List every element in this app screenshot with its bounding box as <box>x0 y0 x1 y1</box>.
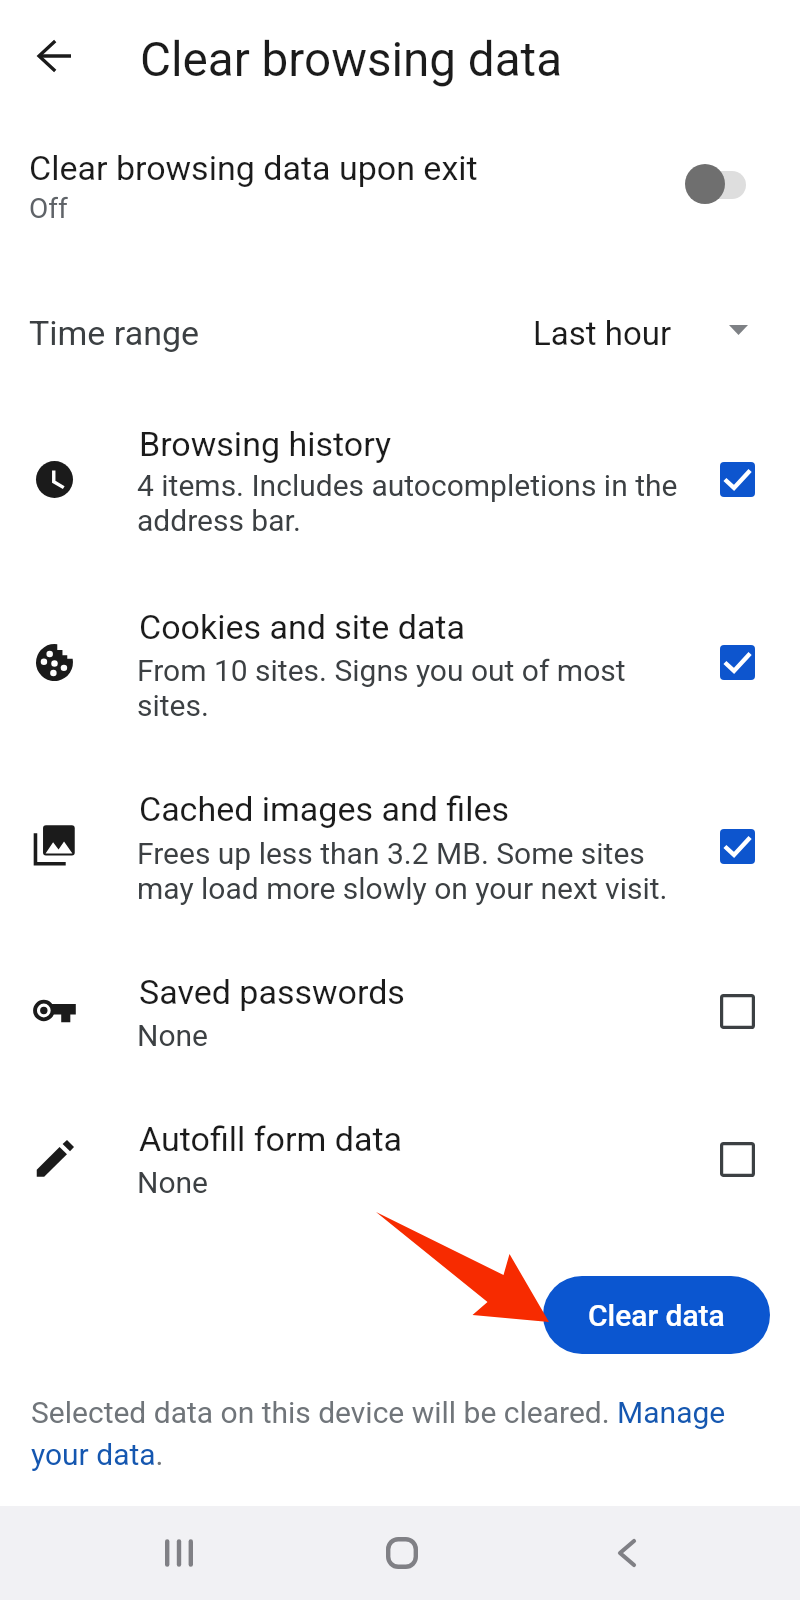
button[interactable]: Recent apps <box>124 1506 234 1600</box>
button[interactable]: Browsing history <box>0 405 800 565</box>
staticText: may load more slowly on your next visit. <box>137 871 668 906</box>
staticText: Last hour <box>533 314 672 353</box>
button[interactable]: Clear browsing data upon exit <box>670 152 766 218</box>
staticText: Saved passwords <box>139 972 405 1012</box>
button[interactable]: Cookies and site data <box>720 645 755 680</box>
button[interactable]: Autofill form data <box>720 1142 755 1177</box>
staticText: sites. <box>137 688 209 723</box>
button[interactable]: Back <box>572 1506 682 1600</box>
button[interactable]: Clear data <box>543 1276 770 1354</box>
button[interactable]: Saved passwords <box>720 994 755 1029</box>
staticText: Cookies and site data <box>139 607 465 647</box>
staticText: address bar. <box>137 503 301 538</box>
staticText: Frees up less than 3.2 MB. Some sites <box>137 836 645 871</box>
staticText: Off <box>29 192 68 225</box>
staticText: From 10 sites. Signs you out of most <box>137 653 626 688</box>
button[interactable]: Clear browsing data upon exit <box>0 131 800 239</box>
button[interactable]: Time range <box>0 285 800 377</box>
button[interactable]: Cached images and files <box>0 772 800 932</box>
staticText: Selected data on this device will be cle… <box>31 1395 731 1473</box>
staticText: Cached images and files <box>139 789 510 829</box>
staticText: Browsing history <box>139 424 392 464</box>
button[interactable]: Navigate up <box>22 23 88 89</box>
staticText: Clear data <box>588 1298 725 1333</box>
staticText: Clear browsing data <box>140 32 563 88</box>
staticText: None <box>137 1165 208 1200</box>
staticText: 4 items. Includes autocompletions in the <box>137 468 678 503</box>
button[interactable]: Autofill form data <box>0 1102 800 1226</box>
staticText: Autofill form data <box>139 1119 403 1159</box>
staticText: Clear browsing data upon exit <box>29 148 478 188</box>
staticText: Time range <box>29 313 200 353</box>
button[interactable]: Saved passwords <box>0 955 800 1079</box>
button[interactable]: Cached images and files <box>720 829 755 864</box>
button[interactable]: Browsing history <box>720 462 755 497</box>
button[interactable]: Cookies and site data <box>0 588 800 748</box>
button[interactable]: Home <box>347 1506 457 1600</box>
staticText: None <box>137 1018 208 1053</box>
